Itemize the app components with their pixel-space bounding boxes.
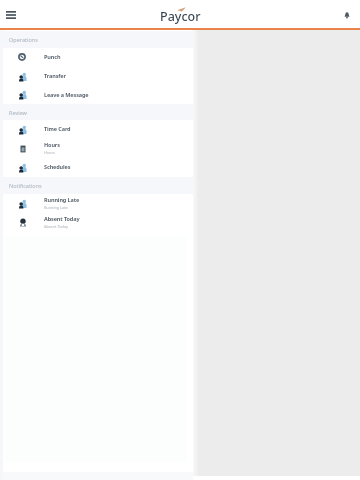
staticText: Running Late (44, 205, 68, 210)
staticText: Absent Today (44, 224, 68, 229)
button[interactable]: Transfer (0, 67, 193, 86)
button[interactable]: Time Card (0, 120, 193, 139)
staticText: Notifications (9, 182, 42, 189)
button[interactable]: Notifications (339, 7, 355, 23)
staticText: Time Card (44, 125, 71, 132)
staticText: Review (9, 109, 27, 116)
button[interactable]: Hours (0, 139, 193, 158)
staticText: Hours (44, 150, 55, 155)
staticText: Paycor (160, 8, 201, 25)
button[interactable]: Absent Today (0, 213, 193, 232)
staticText: Schedules (44, 163, 71, 170)
staticText: Transfer (44, 72, 66, 79)
staticText: Punch (44, 53, 61, 60)
button[interactable]: Punch (0, 48, 193, 67)
staticText: Leave a Message (44, 91, 89, 98)
staticText: Hours (44, 141, 60, 148)
staticText: Running Late (44, 196, 80, 203)
staticText: Absent Today (44, 215, 80, 222)
button[interactable]: Leave a Message (0, 86, 193, 104)
staticText: Operations (9, 36, 38, 43)
button[interactable]: Menu (2, 6, 20, 24)
button[interactable]: Running Late (0, 194, 193, 213)
button[interactable]: Schedules (0, 158, 193, 177)
